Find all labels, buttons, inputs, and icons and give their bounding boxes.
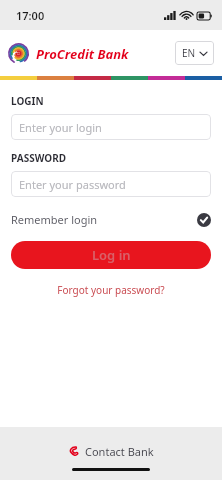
button[interactable]: Remember login <box>11 210 211 229</box>
staticText: 17:00 <box>16 8 45 23</box>
staticText: Remember login <box>11 212 98 227</box>
button[interactable]: Log in <box>11 241 211 269</box>
other: Remember login checked <box>197 213 211 227</box>
button[interactable]: Enter your password <box>11 171 211 197</box>
other: Contact Bank <box>68 446 79 457</box>
staticText: EN <box>182 46 196 60</box>
button[interactable]: EN <box>175 41 214 65</box>
staticText: Contact Bank <box>85 444 154 459</box>
button[interactable]: Forgot your password? <box>51 281 171 299</box>
staticText: Enter your password <box>19 177 126 192</box>
button[interactable]: Enter your login <box>11 114 211 140</box>
staticText: LOGIN <box>11 94 44 108</box>
staticText: PASSWORD <box>11 151 67 165</box>
staticText: Enter your login <box>19 120 102 135</box>
staticText: Log in <box>92 246 131 264</box>
staticText: ProCredit Bank <box>36 45 129 63</box>
button[interactable]: Contact Bank <box>60 440 162 463</box>
